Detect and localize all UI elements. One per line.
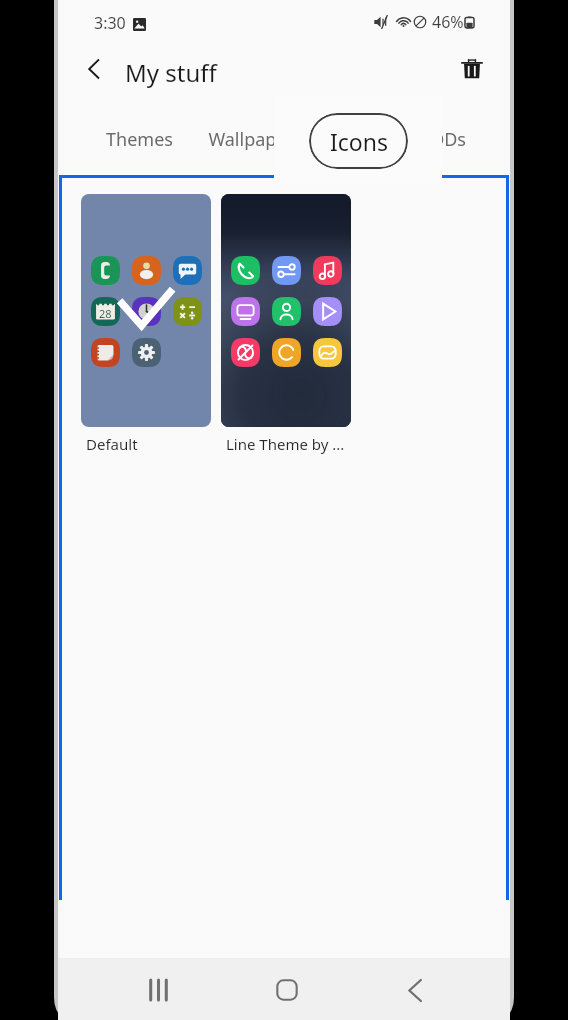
button[interactable]: Line Theme by ...	[221, 194, 351, 454]
button[interactable]: Back	[70, 45, 118, 93]
button[interactable]: AODs	[419, 103, 466, 175]
staticText: Line Theme by ...	[226, 434, 345, 454]
staticText: Icons	[330, 126, 388, 157]
staticText: Themes	[106, 127, 173, 152]
staticText: Default	[86, 434, 138, 454]
staticText: My stuff	[125, 56, 217, 89]
button[interactable]: Icons	[338, 103, 384, 175]
button[interactable]: Back	[389, 964, 441, 1016]
staticText: 46%	[432, 11, 464, 33]
staticText: AODs	[419, 127, 466, 152]
button[interactable]: Wallpapers	[208, 103, 303, 175]
button[interactable]: 28	[81, 194, 211, 454]
staticText: Icons	[338, 127, 384, 152]
staticText: 28	[99, 306, 112, 321]
button[interactable]: Home	[261, 964, 313, 1016]
button[interactable]: Icons	[309, 113, 408, 169]
staticText: Wallpapers	[208, 127, 303, 152]
button[interactable]: Themes	[106, 103, 173, 175]
button[interactable]: Delete	[448, 45, 496, 93]
staticText: 3:30	[94, 12, 126, 34]
button[interactable]: Recent apps	[132, 964, 184, 1016]
